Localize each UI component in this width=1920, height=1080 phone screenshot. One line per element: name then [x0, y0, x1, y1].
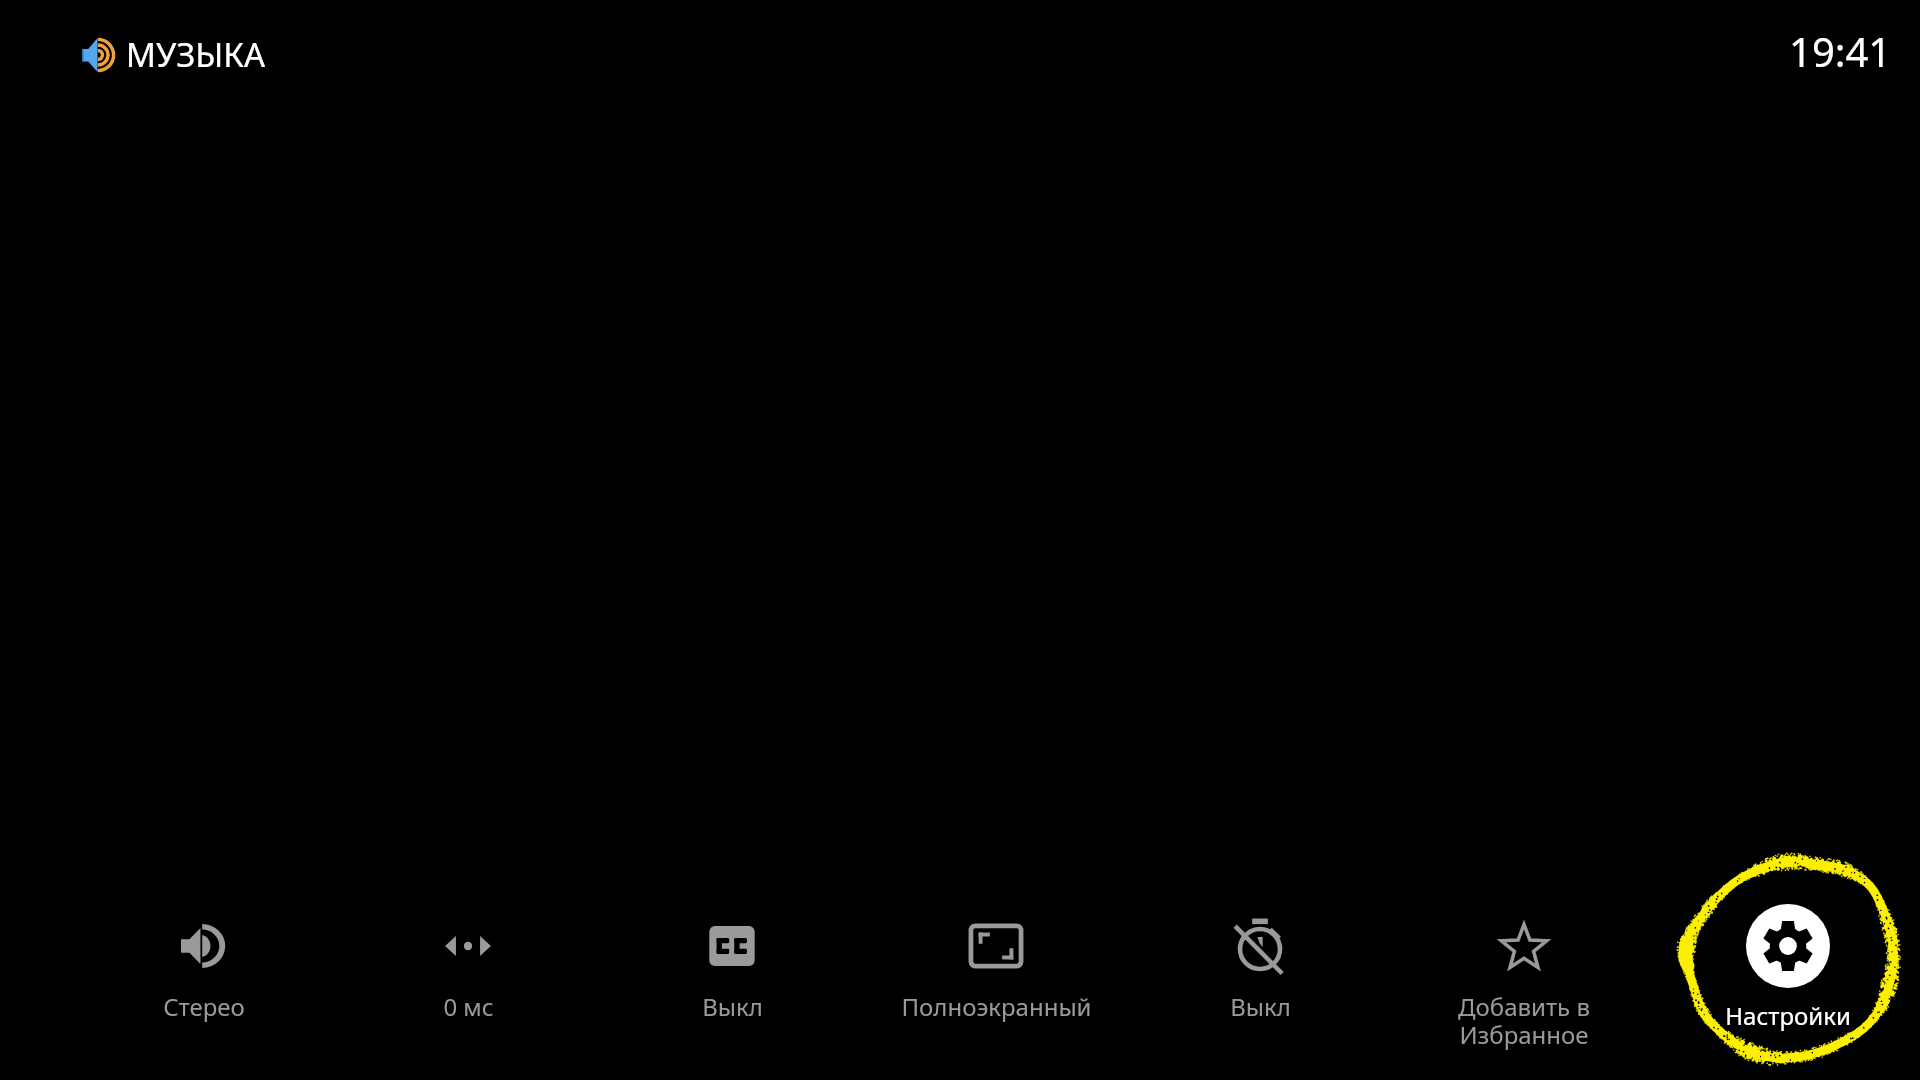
button[interactable]: Добавить в Избранное [1392, 890, 1656, 1080]
staticText: Добавить в Избранное [1458, 990, 1590, 1051]
button[interactable]: Аудиоканал: Стерео [72, 890, 336, 1080]
button[interactable]: Настройки [1656, 890, 1920, 1080]
staticText: Полноэкранный [901, 990, 1092, 1023]
staticText: Стерео [163, 990, 245, 1023]
staticText: Настройки [1725, 999, 1851, 1032]
staticText: МУЗЫКА [126, 32, 265, 76]
button[interactable]: Задержка звука: 0 мс [336, 890, 600, 1080]
button[interactable]: Субтитры: Выкл [600, 890, 864, 1080]
button[interactable]: Таймер сна: Выкл [1128, 890, 1392, 1080]
staticText: Выкл [702, 990, 763, 1023]
staticText: 19:41 [1789, 24, 1892, 78]
staticText: 0 мс [443, 990, 494, 1023]
staticText: Выкл [1230, 990, 1291, 1023]
button[interactable]: Масштаб: Полноэкранный [864, 890, 1128, 1080]
